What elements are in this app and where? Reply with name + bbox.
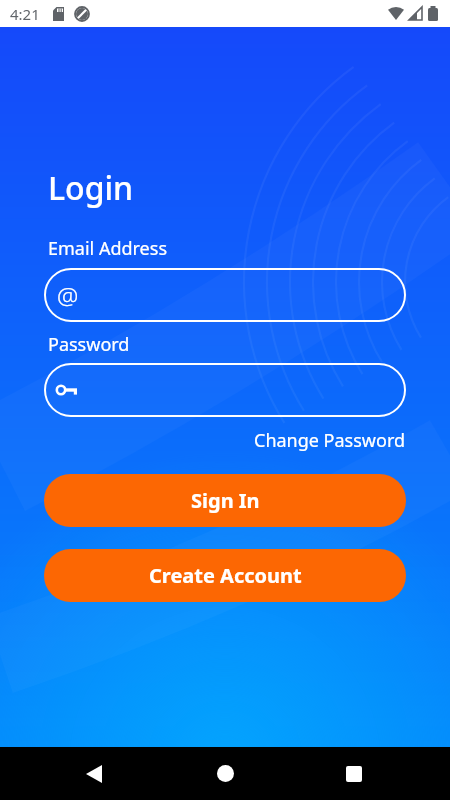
- staticText: 4:21: [10, 4, 40, 24]
- button[interactable]: [217, 765, 234, 782]
- button[interactable]: [44, 363, 406, 417]
- staticText: Login: [48, 166, 134, 210]
- button[interactable]: [346, 766, 362, 782]
- button[interactable]: Sign In: [44, 474, 406, 527]
- staticText: Password: [48, 332, 130, 357]
- button[interactable]: Change Password: [254, 428, 406, 453]
- button[interactable]: Create Account: [44, 549, 406, 602]
- staticText: @: [57, 279, 79, 312]
- staticText: Sign In: [191, 487, 260, 514]
- staticText: Email Address: [48, 236, 168, 261]
- button[interactable]: [86, 765, 102, 783]
- staticText: Create Account: [149, 562, 302, 589]
- button[interactable]: @: [44, 268, 406, 322]
